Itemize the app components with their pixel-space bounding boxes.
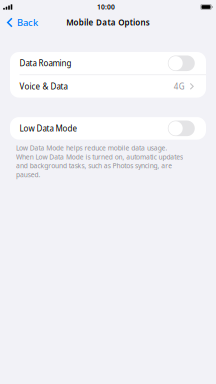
button[interactable]: Voice & Data bbox=[10, 75, 206, 98]
staticText: Low Data Mode bbox=[19, 123, 77, 134]
button[interactable]: Back bbox=[0, 12, 44, 33]
staticText: Voice & Data bbox=[19, 81, 67, 92]
button[interactable]: Data Roaming bbox=[10, 52, 206, 74]
staticText: Data Roaming bbox=[19, 58, 71, 68]
staticText: Mobile Data Options bbox=[66, 17, 150, 28]
button[interactable]: Low Data Mode bbox=[10, 117, 206, 140]
staticText: 4G bbox=[174, 81, 185, 92]
staticText: Low Data Mode helps reduce mobile data u… bbox=[16, 144, 183, 179]
staticText: Back bbox=[17, 16, 38, 29]
staticText: 10:00 bbox=[97, 3, 115, 11]
